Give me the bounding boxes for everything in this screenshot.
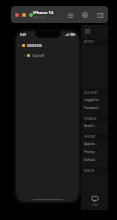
- staticText: iOS 16.2: [33, 16, 46, 20]
- staticText: iPhone 14: [33, 10, 54, 16]
- button[interactable]: Default: [81, 156, 108, 164]
- other: Feedback: [92, 196, 98, 202]
- button[interactable]: Password: [81, 104, 108, 112]
- staticText: Takeoff: [32, 53, 45, 58]
- staticText: BUILDS: [84, 169, 95, 173]
- staticText: DEVICE: [84, 40, 95, 44]
- button[interactable]: Takeoff: [16, 52, 79, 59]
- button[interactable]: Feedback: [81, 194, 108, 208]
- button[interactable]: Zoom: [29, 13, 33, 17]
- staticText: FINANCE: [84, 117, 97, 121]
- button[interactable]: Settings: [81, 11, 89, 19]
- staticText: Default: [84, 158, 95, 162]
- staticText: 9:41: [20, 33, 27, 37]
- button[interactable]: Minimize: [22, 13, 26, 17]
- staticText: Password: [84, 106, 99, 110]
- staticText: GENESIS: [27, 43, 42, 48]
- staticText: Bank li…: [84, 124, 97, 128]
- button[interactable]: Privacy: [81, 148, 108, 156]
- button[interactable]: Menu: [84, 28, 91, 35]
- staticText: Appear…: [84, 142, 97, 146]
- staticText: ACCOUNT: [84, 91, 98, 95]
- button[interactable]: Appear…: [81, 140, 108, 148]
- staticText: SYSTEM: [84, 135, 95, 139]
- button[interactable]: GENESIS: [16, 42, 79, 49]
- staticText: Logged in: [84, 98, 99, 102]
- staticText: Privacy: [84, 150, 95, 154]
- button[interactable]: Bank li…: [81, 122, 108, 130]
- button[interactable]: Logged in: [81, 96, 108, 104]
- staticText: Chat: [92, 203, 98, 207]
- button[interactable]: Toggle panel: [96, 11, 104, 19]
- button[interactable]: Home: [66, 11, 74, 19]
- button[interactable]: Close: [15, 13, 19, 17]
